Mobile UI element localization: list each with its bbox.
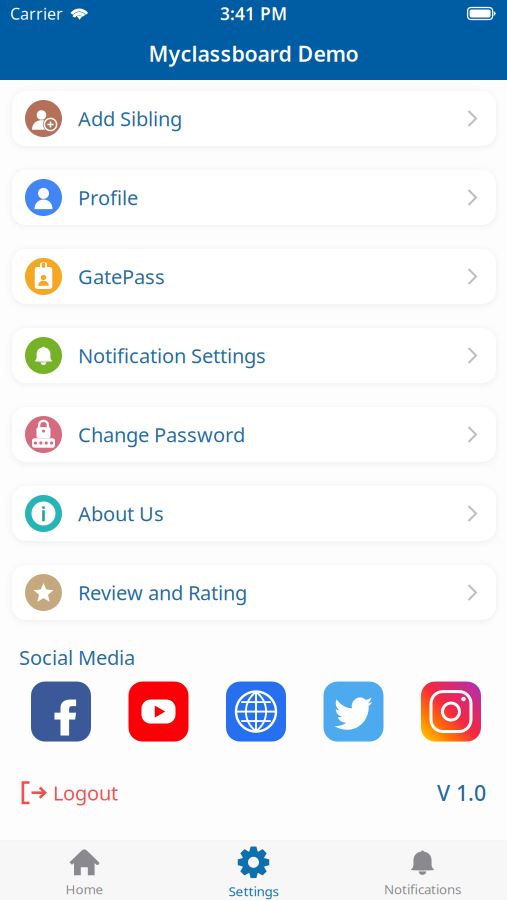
button[interactable]: Notifications <box>338 848 507 898</box>
staticText: 3:41 PM <box>220 2 287 25</box>
button[interactable]: Notification Settings <box>12 328 496 383</box>
staticText: Settings <box>228 882 278 900</box>
staticText: Review and Rating <box>78 579 247 606</box>
button[interactable]: Twitter <box>323 682 383 742</box>
button[interactable]: Add Sibling <box>12 91 496 146</box>
button[interactable]: Settings <box>169 846 338 900</box>
button[interactable]: Review and Rating <box>12 565 496 620</box>
button[interactable]: i <box>12 486 496 541</box>
button[interactable]: YouTube <box>128 682 188 742</box>
staticText: Home <box>65 880 103 898</box>
staticText: Profile <box>78 184 138 211</box>
staticText: Add Sibling <box>78 105 182 132</box>
staticText: V 1.0 <box>437 779 486 807</box>
button[interactable]: Instagram <box>421 682 481 742</box>
staticText: About Us <box>78 500 164 527</box>
staticText: Carrier <box>10 3 63 24</box>
button[interactable]: Logout <box>16 779 118 806</box>
button[interactable]: Home <box>0 848 169 898</box>
staticText: Social Media <box>19 644 135 671</box>
staticText: Change Password <box>78 421 245 448</box>
button[interactable]: Profile <box>12 170 496 225</box>
button[interactable]: Facebook <box>31 682 91 742</box>
button[interactable]: Change Password <box>12 407 496 462</box>
staticText: Logout <box>53 779 118 806</box>
staticText: Myclassboard Demo <box>148 39 358 68</box>
button[interactable]: GatePass <box>12 249 496 304</box>
staticText: Notification Settings <box>78 342 266 369</box>
staticText: Notifications <box>384 880 461 898</box>
button[interactable]: Website <box>226 682 286 742</box>
staticText: GatePass <box>78 263 165 290</box>
staticText: i <box>40 500 46 527</box>
